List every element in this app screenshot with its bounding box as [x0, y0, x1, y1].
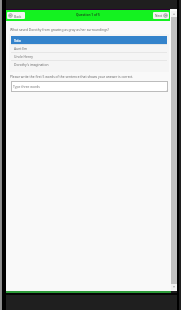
button[interactable]: Type three words — [11, 81, 168, 92]
staticText: Back — [14, 14, 22, 18]
button[interactable]: Aunt Em — [11, 44, 167, 52]
staticText: Aunt Em — [14, 46, 28, 50]
button[interactable]: Uncle Henry — [11, 52, 167, 60]
staticText: Toto — [14, 38, 21, 42]
staticText: Next — [155, 14, 162, 18]
button[interactable]: Scroll up — [171, 11, 177, 17]
staticText: What saved Dorothy from growing as gray … — [10, 27, 109, 31]
staticText: Question 1 of 5 — [76, 13, 100, 17]
other: Back — [8, 13, 13, 18]
other: Next — [163, 13, 168, 18]
button[interactable]: Back — [7, 12, 25, 19]
button[interactable]: Dorothy's imagination — [11, 60, 167, 68]
button[interactable]: Toto — [11, 36, 167, 44]
staticText: Uncle Henry — [14, 54, 33, 58]
staticText: Dorothy's imagination — [14, 62, 49, 66]
button[interactable]: Next — [153, 12, 169, 19]
staticText: Please write the first 5 words of the se… — [10, 74, 134, 78]
staticText: Type three words — [13, 84, 40, 88]
button[interactable]: Scroll down — [171, 284, 177, 290]
